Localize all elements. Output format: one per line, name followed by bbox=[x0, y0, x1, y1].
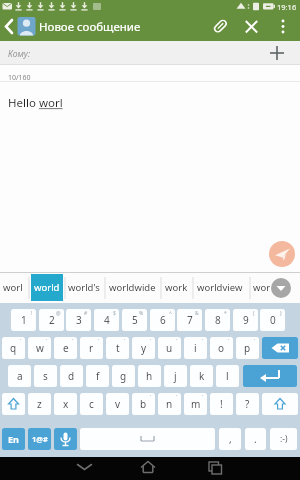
button[interactable]: d bbox=[60, 365, 83, 387]
button[interactable] bbox=[262, 393, 298, 415]
staticText: :-) bbox=[280, 433, 288, 445]
button[interactable]: e bbox=[54, 337, 77, 359]
button[interactable]: 4 bbox=[94, 309, 119, 331]
button[interactable]: . bbox=[245, 428, 266, 450]
button[interactable]: work bbox=[165, 281, 188, 294]
button[interactable]: b bbox=[132, 393, 155, 415]
button[interactable]: 0 bbox=[260, 309, 285, 331]
button[interactable]: 9 bbox=[233, 309, 258, 331]
button[interactable]: , bbox=[219, 428, 241, 450]
button[interactable] bbox=[2, 393, 25, 415]
button[interactable]: 2 bbox=[39, 309, 64, 331]
staticText: b bbox=[140, 397, 147, 411]
button[interactable]: world's bbox=[68, 281, 100, 294]
staticText: ˊ bbox=[46, 338, 48, 345]
staticText: f bbox=[96, 369, 100, 383]
staticText: c bbox=[89, 397, 94, 411]
button[interactable]: world bbox=[31, 274, 63, 301]
button[interactable]: l bbox=[216, 365, 239, 387]
staticText: ˊ bbox=[150, 394, 152, 401]
button[interactable]: 5 bbox=[122, 309, 147, 331]
staticText: En bbox=[8, 433, 19, 445]
staticText: ! bbox=[31, 310, 33, 317]
button[interactable]: worldwide bbox=[109, 281, 156, 294]
staticText: t bbox=[116, 341, 120, 355]
button[interactable]: q bbox=[2, 337, 25, 359]
button[interactable]: v bbox=[106, 393, 129, 415]
staticText: ! bbox=[220, 397, 223, 411]
button[interactable]: ! bbox=[210, 393, 233, 415]
staticText: j bbox=[174, 369, 177, 383]
button[interactable] bbox=[243, 365, 297, 387]
button[interactable]: s bbox=[34, 365, 57, 387]
staticText: Hello worl bbox=[8, 95, 63, 111]
button[interactable]: i bbox=[184, 337, 207, 359]
staticText: i bbox=[194, 341, 197, 355]
button[interactable]: f bbox=[86, 365, 109, 387]
staticText: ˊ bbox=[150, 338, 152, 345]
button[interactable]: Кому: bbox=[0, 41, 300, 65]
button[interactable] bbox=[194, 457, 234, 479]
button[interactable]: z bbox=[28, 393, 51, 415]
button[interactable]: h bbox=[138, 365, 161, 387]
staticText: 9 bbox=[243, 313, 249, 327]
button[interactable]: a bbox=[8, 365, 31, 387]
button[interactable]: p bbox=[236, 337, 259, 359]
staticText: s bbox=[43, 369, 48, 383]
button[interactable] bbox=[262, 337, 298, 359]
staticText: % bbox=[139, 310, 144, 317]
button[interactable]: 3 bbox=[66, 309, 91, 331]
button[interactable]: k bbox=[190, 365, 213, 387]
staticText: m bbox=[191, 397, 201, 411]
staticText: ˊ bbox=[124, 338, 126, 345]
button[interactable]: ? bbox=[236, 393, 259, 415]
button[interactable]: m bbox=[184, 393, 207, 415]
button[interactable]: 1 bbox=[11, 309, 36, 331]
button[interactable] bbox=[128, 457, 168, 479]
staticText: ˊ bbox=[72, 338, 74, 345]
staticText: r bbox=[89, 341, 94, 355]
button[interactable]: t bbox=[106, 337, 129, 359]
staticText: n bbox=[166, 397, 173, 411]
button[interactable] bbox=[80, 428, 215, 450]
button[interactable] bbox=[269, 241, 295, 267]
staticText: h bbox=[146, 369, 153, 383]
staticText: Кому: bbox=[8, 48, 31, 60]
button[interactable]: y bbox=[132, 337, 155, 359]
staticText: ( bbox=[253, 310, 255, 317]
button[interactable]: 7 bbox=[177, 309, 202, 331]
staticText: 0 bbox=[270, 313, 276, 327]
button[interactable]: o bbox=[210, 337, 233, 359]
button[interactable]: c bbox=[80, 393, 103, 415]
button[interactable]: Новое сообщение bbox=[39, 19, 141, 35]
button[interactable]: g bbox=[112, 365, 135, 387]
staticText: ˊ bbox=[176, 394, 178, 401]
staticText: ˊ bbox=[202, 338, 204, 345]
staticText: 2 bbox=[49, 313, 55, 327]
button[interactable]: 6 bbox=[150, 309, 175, 331]
staticText: $ bbox=[113, 310, 116, 317]
button[interactable] bbox=[54, 428, 77, 450]
staticText: 19:16 bbox=[277, 2, 297, 12]
button[interactable]: n bbox=[158, 393, 181, 415]
staticText: 5 bbox=[132, 313, 138, 327]
button[interactable]: j bbox=[164, 365, 187, 387]
button[interactable]: wor bbox=[253, 281, 271, 294]
button[interactable]: u bbox=[158, 337, 181, 359]
button[interactable]: r bbox=[80, 337, 103, 359]
button[interactable]: worldview bbox=[197, 281, 243, 294]
button[interactable]: x bbox=[54, 393, 77, 415]
staticText: world bbox=[34, 281, 60, 294]
button[interactable]: En bbox=[2, 428, 25, 450]
button[interactable]: w bbox=[28, 337, 51, 359]
button[interactable] bbox=[271, 278, 291, 298]
staticText: ˊ bbox=[20, 338, 22, 345]
button[interactable]: worl bbox=[3, 281, 23, 294]
staticText: ^ bbox=[169, 310, 172, 317]
button[interactable]: 1@# bbox=[28, 428, 51, 450]
button[interactable]: :-) bbox=[270, 428, 297, 450]
staticText: g bbox=[120, 369, 127, 383]
staticText: @ bbox=[56, 310, 61, 317]
button[interactable]: 8 bbox=[205, 309, 230, 331]
button[interactable] bbox=[64, 457, 104, 479]
